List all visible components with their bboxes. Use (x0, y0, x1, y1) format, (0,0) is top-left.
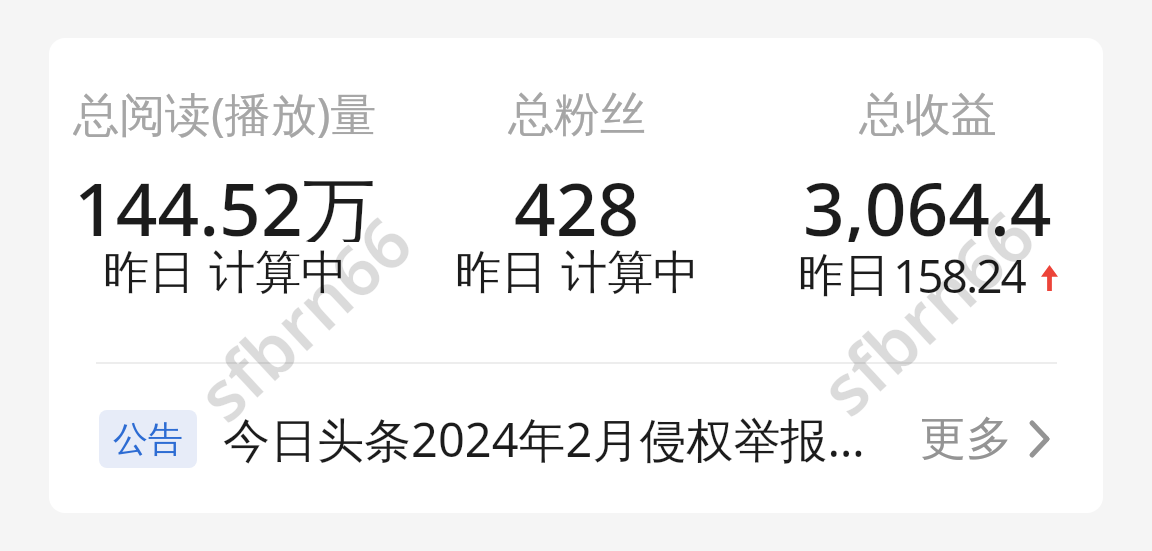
button[interactable]: 公告 (49, 364, 1103, 513)
staticText: 公告 (113, 417, 183, 461)
staticText: 更多 (920, 410, 1012, 468)
staticText: 144.52万 (74, 158, 376, 242)
other: More announcements (1029, 420, 1050, 458)
staticText: 总粉丝 (508, 86, 646, 144)
staticText: 总收益 (859, 86, 997, 144)
staticText: 428 (514, 158, 640, 242)
staticText: 昨日 (455, 244, 547, 302)
staticText: 昨日 (798, 247, 890, 305)
staticText: 158.24 (893, 244, 1025, 307)
staticText: sfbrn66 (799, 188, 1043, 424)
button[interactable]: 总收益 (752, 82, 1103, 307)
staticText: 计算中 (209, 244, 347, 302)
button[interactable]: 总粉丝 (401, 82, 752, 302)
staticText: 3,064.4 (803, 158, 1052, 242)
staticText: sfbrn66 (176, 194, 420, 430)
button[interactable]: 更多 (920, 364, 1050, 513)
staticText: 总阅读(播放)量 (73, 82, 377, 144)
staticText: 今日头条2024年2月侵权举报… (223, 407, 865, 471)
staticText: 计算中 (561, 244, 699, 302)
staticText: 昨日 (103, 244, 195, 302)
button[interactable]: 总阅读(播放)量 (49, 82, 401, 302)
